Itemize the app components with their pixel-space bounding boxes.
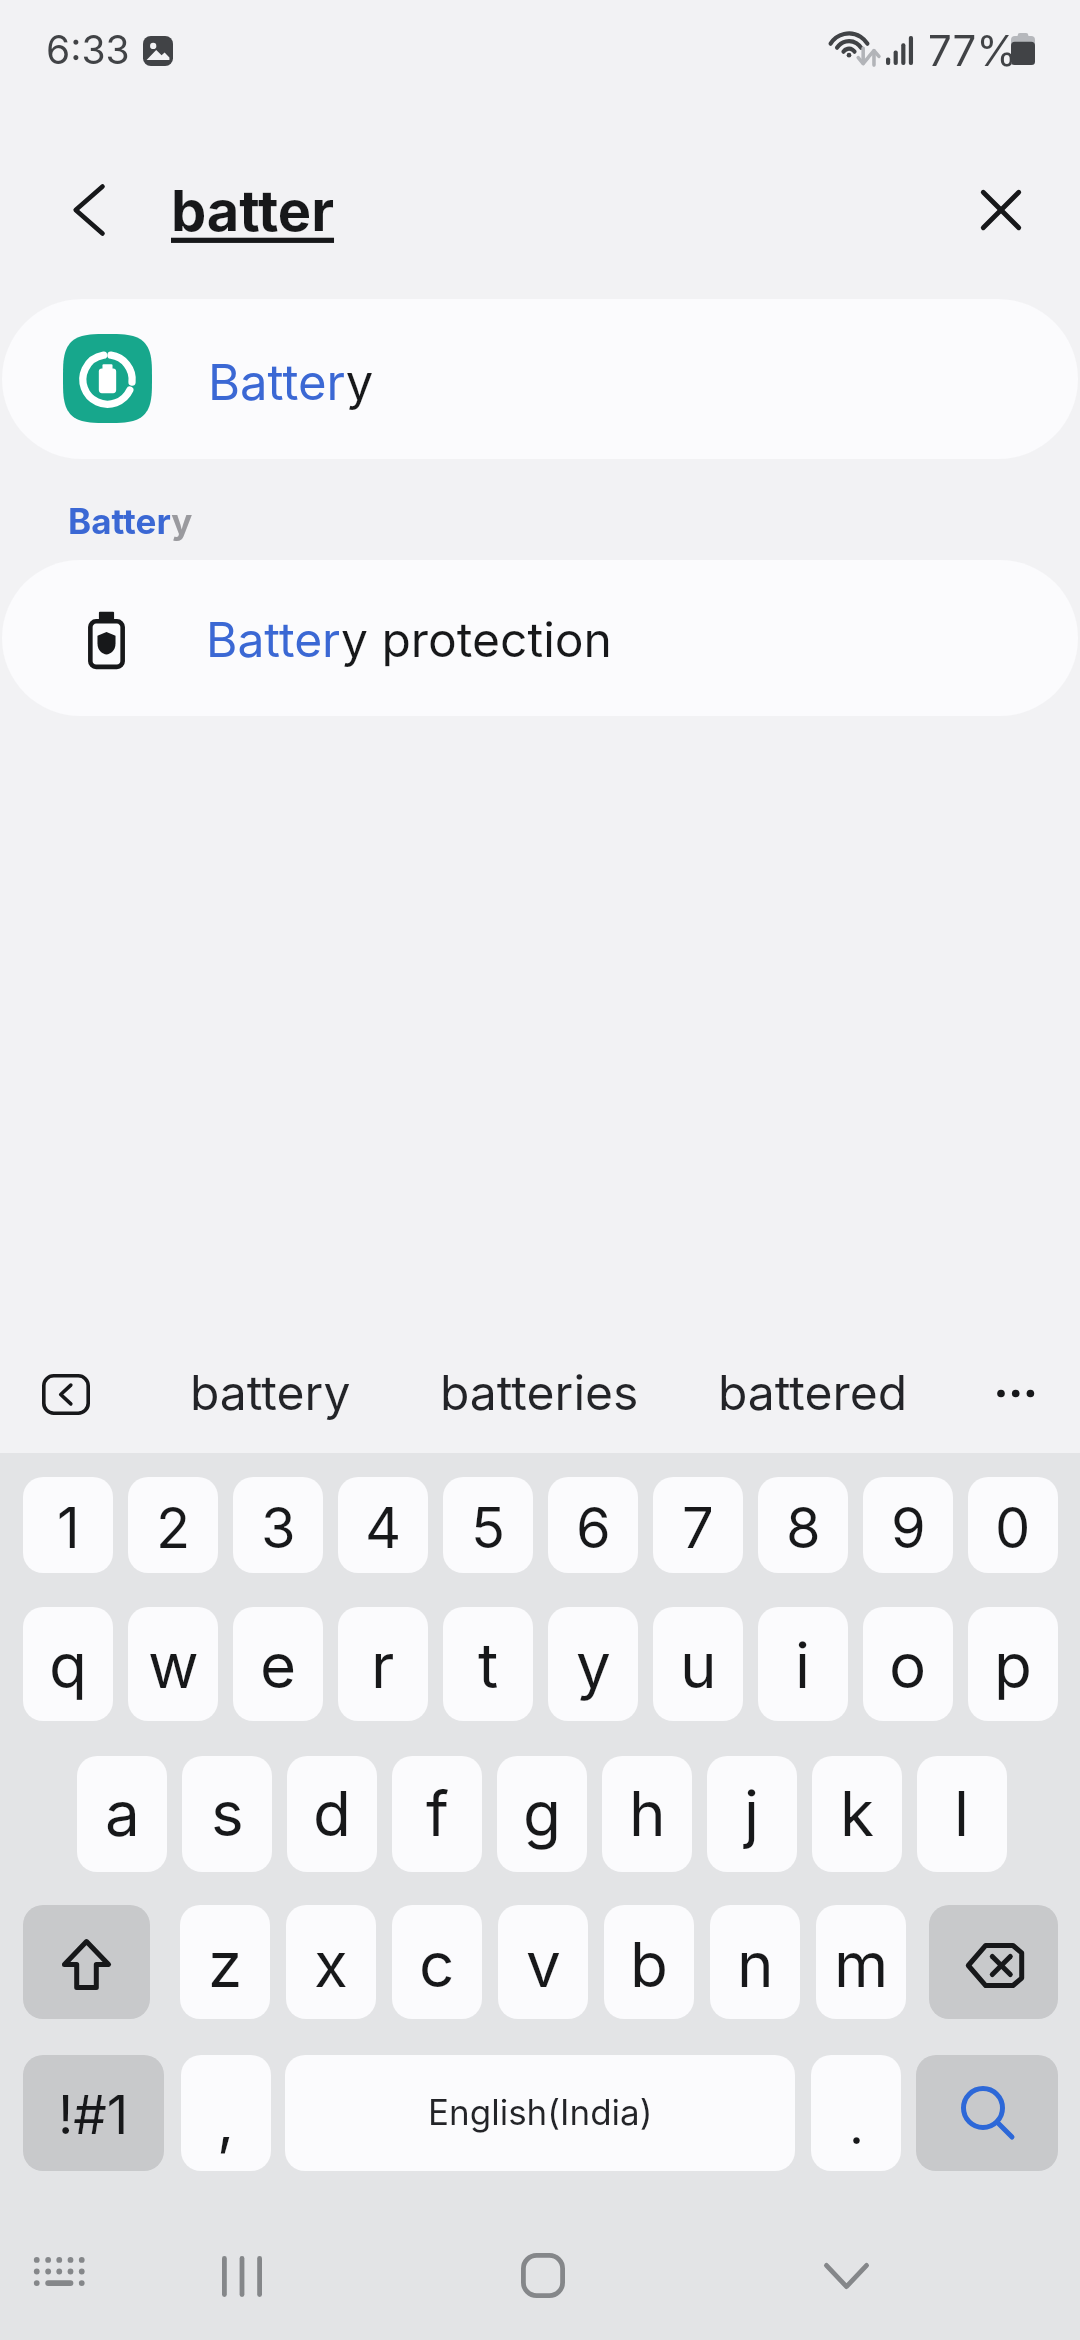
button[interactable]: y [548, 1607, 638, 1721]
button[interactable]: c [392, 1905, 482, 2019]
button[interactable]: i [758, 1607, 848, 1721]
button[interactable]: v [498, 1905, 588, 2019]
button[interactable]: Home [491, 2237, 595, 2317]
button[interactable]: z [180, 1905, 270, 2019]
button[interactable]: batteries [422, 1351, 657, 1433]
staticText: t [478, 1628, 499, 1703]
button[interactable]: 2 [128, 1477, 218, 1573]
button[interactable]: d [287, 1756, 377, 1872]
button[interactable]: Battery [2, 299, 1078, 459]
button[interactable]: a [77, 1756, 167, 1872]
button[interactable]: p [968, 1607, 1058, 1721]
button[interactable]: , [181, 2055, 271, 2171]
button[interactable]: Switch keyboard [6, 2237, 112, 2307]
button[interactable]: e [233, 1607, 323, 1721]
button[interactable]: k [812, 1756, 902, 1872]
staticText: b [630, 1927, 668, 2002]
staticText: v [526, 1927, 561, 2002]
button[interactable]: b [604, 1905, 694, 2019]
button[interactable]: battered [700, 1351, 926, 1433]
button[interactable]: r [338, 1607, 428, 1721]
staticText: h [629, 1776, 666, 1851]
button[interactable]: 6 [548, 1477, 638, 1573]
staticText: batter [171, 177, 335, 245]
staticText: f [426, 1776, 449, 1851]
button[interactable]: Recent apps [190, 2237, 294, 2317]
staticText: l [954, 1776, 970, 1851]
button[interactable]: n [710, 1905, 800, 2019]
button[interactable]: More suggestions [973, 1361, 1059, 1425]
staticText: m [834, 1927, 889, 2002]
button[interactable]: 3 [233, 1477, 323, 1573]
staticText: 6:33 [46, 26, 130, 73]
button[interactable]: o [863, 1607, 953, 1721]
staticText: k [840, 1776, 875, 1851]
button[interactable]: 5 [443, 1477, 533, 1573]
button[interactable]: Navigate up [66, 176, 110, 244]
staticText: p [994, 1628, 1032, 1703]
button[interactable]: w [128, 1607, 218, 1721]
staticText: c [419, 1927, 455, 2002]
button[interactable]: English(India) [285, 2055, 795, 2171]
staticText: 5 [471, 1494, 506, 1562]
staticText: . [849, 2094, 864, 2157]
button[interactable]: Shift [23, 1905, 150, 2019]
button[interactable]: Previous suggestions [42, 1374, 90, 1415]
staticText: 0 [995, 1494, 1031, 1562]
button[interactable]: 1 [23, 1477, 113, 1573]
staticText: 1 [57, 1494, 80, 1562]
staticText: z [208, 1927, 243, 2002]
staticText: battered [718, 1363, 908, 1421]
staticText: n [737, 1927, 774, 2002]
button[interactable]: s [182, 1756, 272, 1872]
staticText: j [744, 1776, 760, 1851]
staticText: English(India) [428, 2091, 653, 2133]
staticText: Battery protection [206, 610, 612, 668]
staticText: s [211, 1776, 244, 1851]
staticText: q [49, 1628, 87, 1703]
button[interactable]: j [707, 1756, 797, 1872]
button[interactable]: 0 [968, 1477, 1058, 1573]
staticText: 8 [786, 1494, 821, 1562]
staticText: d [313, 1776, 351, 1851]
button[interactable]: . [811, 2055, 901, 2171]
button[interactable]: l [917, 1756, 1007, 1872]
button[interactable]: Battery protection [2, 560, 1078, 716]
button[interactable]: x [286, 1905, 376, 2019]
button[interactable]: 4 [338, 1477, 428, 1573]
staticText: batteries [440, 1363, 639, 1421]
button[interactable]: Clear search [977, 186, 1025, 234]
staticText: y [576, 1628, 611, 1703]
staticText: !#1 [58, 2083, 129, 2147]
button[interactable]: f [392, 1756, 482, 1872]
staticText: , [217, 2085, 235, 2158]
button[interactable]: Search [916, 2055, 1058, 2171]
button[interactable]: 9 [863, 1477, 953, 1573]
button[interactable]: u [653, 1607, 743, 1721]
button[interactable]: Hide keyboard [794, 2237, 898, 2317]
button[interactable]: g [497, 1756, 587, 1872]
staticText: 6 [576, 1494, 611, 1562]
button[interactable]: h [602, 1756, 692, 1872]
button[interactable]: battery [172, 1351, 369, 1433]
button[interactable]: m [816, 1905, 906, 2019]
staticText: g [523, 1776, 562, 1851]
staticText: e [260, 1628, 297, 1703]
staticText: 7 [682, 1494, 714, 1562]
staticText: x [314, 1927, 348, 2002]
button[interactable]: Backspace [929, 1905, 1058, 2019]
staticText: w [148, 1628, 199, 1703]
button[interactable]: 7 [653, 1477, 743, 1573]
staticText: battery [190, 1363, 351, 1421]
staticText: u [680, 1628, 717, 1703]
staticText: Battery [208, 353, 374, 412]
button[interactable]: q [23, 1607, 113, 1721]
staticText: Battery [68, 500, 193, 542]
button[interactable]: 8 [758, 1477, 848, 1573]
staticText: r [371, 1628, 395, 1703]
staticText: 2 [156, 1494, 191, 1562]
button[interactable]: !#1 [23, 2055, 164, 2171]
button[interactable]: t [443, 1607, 533, 1721]
staticText: 77% [928, 25, 1018, 76]
staticText: 9 [891, 1494, 926, 1562]
